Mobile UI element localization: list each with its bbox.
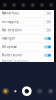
staticText: Manual focus <box>2 11 19 15</box>
button[interactable]: Settings <box>49 3 53 7</box>
staticText: Flashlight <box>2 37 15 40</box>
button[interactable]: Video mode <box>48 88 54 94</box>
button[interactable]: Shutter <box>22 86 32 96</box>
button[interactable]: Manual focus <box>0 9 54 17</box>
button[interactable]: White balance <box>40 3 44 7</box>
button[interactable]: Grid <box>30 3 35 7</box>
button[interactable]: Switch camera <box>37 89 42 94</box>
button[interactable]: Flash <box>3 3 7 7</box>
button[interactable]: HDR <box>12 3 16 7</box>
staticText: Shutter sound <box>2 53 22 57</box>
button[interactable]: HD upload <box>0 43 54 51</box>
button[interactable]: Flashlight <box>0 34 54 43</box>
button[interactable]: Mode <box>14 90 16 92</box>
staticText: Face detection <box>2 28 22 32</box>
staticText: Geotagging <box>2 20 19 23</box>
staticText: HD upload <box>2 45 17 49</box>
button[interactable]: Geotagging <box>0 18 54 26</box>
staticText: Standard resolution <box>2 59 29 63</box>
button[interactable]: Face detection <box>0 26 54 34</box>
button[interactable]: Shutter sound <box>0 51 54 59</box>
button[interactable]: Timer <box>21 3 26 7</box>
button[interactable]: Gallery <box>2 88 9 94</box>
